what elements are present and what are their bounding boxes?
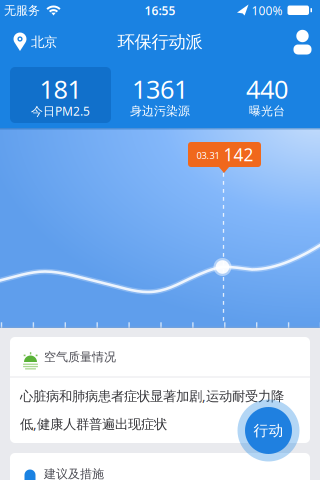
staticText: 身边污染源: [130, 104, 190, 118]
button[interactable]: 个人中心: [290, 29, 314, 55]
staticText: 心脏病和肺病患者症状显著加剧,运动耐受力降: [20, 387, 284, 405]
staticText: 行动: [253, 421, 283, 439]
staticText: 今日PM2.5: [31, 103, 90, 119]
staticText: 03.31: [196, 149, 219, 162]
staticText: 曝光台: [249, 104, 285, 118]
staticText: 无服务: [4, 3, 40, 18]
staticText: 100%: [251, 2, 282, 18]
button[interactable]: 1361: [109, 67, 210, 123]
button[interactable]: 181: [10, 67, 111, 123]
button[interactable]: 440: [216, 67, 317, 123]
staticText: 16:55: [144, 2, 175, 18]
staticText: 1361: [132, 72, 188, 106]
button[interactable]: 行动: [237, 399, 299, 461]
staticText: 142: [223, 143, 253, 166]
staticText: 181: [39, 72, 81, 106]
button[interactable]: 选择城市: [13, 20, 77, 64]
staticText: 440: [246, 72, 288, 106]
staticText: 北京: [31, 34, 57, 50]
staticText: 低,健康人群普遍出现症状: [20, 415, 167, 433]
staticText: 建议及措施: [44, 467, 104, 480]
staticText: 空气质量情况: [44, 350, 116, 364]
staticText: 环保行动派: [117, 31, 202, 53]
